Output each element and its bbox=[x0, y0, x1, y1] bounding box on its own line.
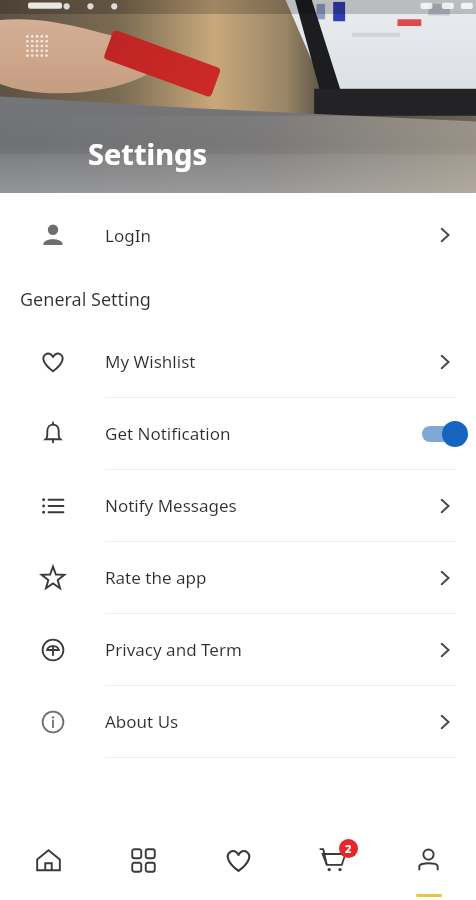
staticText: My Wishlist bbox=[105, 350, 414, 373]
button[interactable]: Get Notification toggle bbox=[422, 420, 468, 448]
button[interactable]: Get Notification bbox=[0, 398, 476, 469]
staticText: Rate the app bbox=[105, 566, 414, 589]
staticText: Settings bbox=[88, 134, 207, 173]
button[interactable]: Rate the app bbox=[0, 542, 476, 613]
button[interactable]: Cart bbox=[286, 820, 381, 900]
button[interactable]: Wishlist bbox=[191, 820, 286, 900]
staticText: Notify Messages bbox=[105, 494, 414, 517]
button[interactable]: Notify Messages bbox=[0, 470, 476, 541]
staticText: About Us bbox=[105, 710, 414, 733]
button[interactable]: LogIn bbox=[0, 203, 476, 267]
button[interactable]: My Wishlist bbox=[0, 326, 476, 397]
staticText: 2 bbox=[345, 841, 352, 856]
staticText: General Setting bbox=[20, 287, 151, 312]
button[interactable]: Categories bbox=[96, 820, 191, 900]
button[interactable]: Profile bbox=[381, 820, 476, 900]
staticText: Privacy and Term bbox=[105, 638, 414, 661]
button[interactable]: About Us bbox=[0, 686, 476, 757]
staticText: LogIn bbox=[105, 224, 414, 247]
staticText: Get Notification bbox=[105, 422, 414, 445]
button[interactable]: Privacy and Term bbox=[0, 614, 476, 685]
button[interactable]: Home bbox=[0, 820, 96, 900]
